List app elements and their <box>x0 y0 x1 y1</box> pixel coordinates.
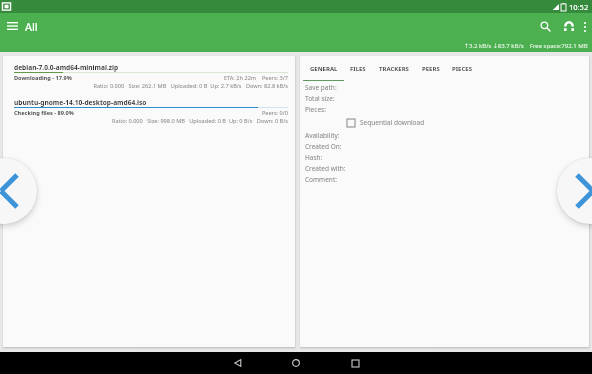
staticText: PEERS <box>422 65 440 73</box>
staticText: Comment: <box>305 175 337 184</box>
staticText: ↑3.2 kB/s ↓83.7 kB/s Free space:792.1 MB <box>464 42 588 50</box>
staticText: FILES <box>350 65 366 73</box>
staticText: 10:52 <box>569 2 589 12</box>
button[interactable]: Open navigation drawer <box>0 16 24 36</box>
button[interactable]: Add torrent from magnet link <box>558 15 579 36</box>
staticText: TRACKERS <box>379 65 409 73</box>
button[interactable]: FILES <box>344 56 372 81</box>
staticText: Created On: <box>305 142 342 151</box>
staticText: debian-7.0.0-amd64-minimal.zip <box>14 63 119 72</box>
button[interactable]: Home <box>278 352 314 374</box>
staticText: Ratio: 0.000 Size: 262.1 MB Uploaded: 0 … <box>14 82 288 90</box>
staticText: Downloading - 17.9% <box>14 74 72 82</box>
staticText: Sequential download <box>360 118 425 127</box>
staticText: Total size: <box>305 94 335 103</box>
button[interactable]: Search <box>535 16 556 37</box>
staticText: ETA: 2h 22m Peers: 3/7 <box>14 74 288 82</box>
button[interactable]: Recent apps <box>337 352 373 374</box>
staticText: Availability: <box>305 131 340 140</box>
button[interactable]: Next screenshot <box>557 158 592 224</box>
button[interactable]: More options <box>578 16 592 37</box>
button[interactable]: debian-7.0.0-amd64-minimal.zip <box>3 56 295 91</box>
staticText: All <box>25 19 38 34</box>
staticText: Created with: <box>305 164 346 173</box>
staticText: Pieces: <box>305 105 326 114</box>
button[interactable]: Previous screenshot <box>0 158 37 224</box>
button[interactable]: TRACKERS <box>372 56 416 81</box>
button[interactable]: GENERAL <box>303 56 344 81</box>
staticText: Save path: <box>305 83 337 92</box>
button[interactable]: Sequential download <box>347 118 425 127</box>
staticText: Peers: 0/0 <box>14 109 288 117</box>
staticText: Hash: <box>305 153 323 162</box>
staticText: GENERAL <box>310 65 338 73</box>
staticText: Checking files - 89.0% <box>14 109 74 117</box>
button[interactable]: PEERS <box>416 56 446 81</box>
staticText: Ratio: 0.000 Size: 998.0 MB Uploaded: 0 … <box>14 117 288 125</box>
staticText: PIECES <box>452 65 472 73</box>
button[interactable]: Back <box>220 352 256 374</box>
button[interactable]: ubuntu-gnome-14.10-desktop-amd64.iso <box>3 91 295 126</box>
staticText: ubuntu-gnome-14.10-desktop-amd64.iso <box>14 98 147 107</box>
button[interactable]: PIECES <box>446 56 478 81</box>
